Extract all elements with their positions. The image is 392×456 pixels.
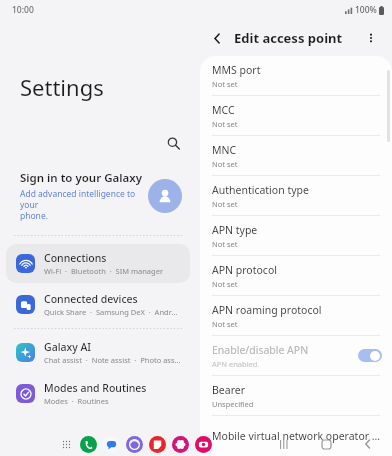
button[interactable]: Back <box>206 27 228 49</box>
staticText: Chat assist · Note assist · Photo assist <box>44 355 182 365</box>
button[interactable]: APN roaming protocol <box>200 296 392 335</box>
staticText: Enable/disable APN <box>212 343 309 357</box>
button[interactable]: Authentication type <box>200 176 392 215</box>
button[interactable]: APN protocol <box>200 256 392 295</box>
button[interactable]: Apps <box>58 436 74 452</box>
button[interactable]: Back <box>358 434 378 454</box>
staticText: APN roaming protocol <box>212 303 322 317</box>
staticText: MMS port <box>212 63 261 77</box>
staticText: Not set <box>212 279 238 289</box>
staticText: Sign in to your Galaxy <box>20 170 142 186</box>
button[interactable]: APN type <box>200 216 392 255</box>
staticText: Quick Share · Samsung DeX · Android Auto <box>44 307 182 317</box>
button[interactable]: Connections <box>6 244 190 283</box>
button[interactable]: Bearer <box>200 376 392 415</box>
staticText: Authentication type <box>212 183 309 197</box>
staticText: Edit access point <box>234 29 360 47</box>
staticText: Unspecified <box>212 399 254 409</box>
staticText: Bearer <box>212 383 246 397</box>
staticText: Connected devices <box>44 292 138 306</box>
staticText: Not set <box>212 239 238 249</box>
staticText: MNC <box>212 143 237 157</box>
staticText: Galaxy AI <box>44 340 92 354</box>
staticText: Connections <box>44 251 107 265</box>
staticText: Not set <box>212 319 238 329</box>
button[interactable]: MCC <box>200 96 392 135</box>
staticText: APN enabled. <box>212 359 260 369</box>
staticText: Not set <box>212 119 238 129</box>
staticText: Settings <box>20 72 196 102</box>
staticText: APN type <box>212 223 258 237</box>
button[interactable]: Internet <box>126 436 143 453</box>
button[interactable]: Messages <box>103 436 120 453</box>
button[interactable]: Connected devices <box>6 285 190 324</box>
button[interactable]: MMS port <box>200 56 392 95</box>
staticText: APN protocol <box>212 263 277 277</box>
button[interactable]: Enable APN <box>358 349 382 362</box>
staticText: Not set <box>212 159 238 169</box>
button[interactable]: Modes and Routines <box>6 374 190 413</box>
staticText: Modes · Routines <box>44 396 109 406</box>
button[interactable]: Recents <box>274 434 294 454</box>
button[interactable]: Camera <box>195 436 212 453</box>
button[interactable]: Notes <box>149 436 166 453</box>
staticText: Modes and Routines <box>44 381 147 395</box>
button[interactable]: Photos <box>172 436 189 453</box>
staticText: MCC <box>212 103 235 117</box>
staticText: Not set <box>212 199 238 209</box>
button[interactable]: Search <box>162 132 184 154</box>
button[interactable]: Mobile virtual network operator type <box>200 416 392 455</box>
staticText: Add advanced intelligence to your phone. <box>20 188 142 221</box>
staticText: 100% <box>355 4 377 16</box>
button[interactable]: Enable/disable APN <box>200 336 392 375</box>
button[interactable]: Sign in to your Galaxy <box>0 164 196 227</box>
staticText: 10:00 <box>12 4 34 16</box>
button[interactable]: More options <box>360 27 382 49</box>
button[interactable]: Galaxy AI <box>6 333 190 372</box>
staticText: Mobile virtual network operator type <box>212 429 382 443</box>
staticText: Not set <box>212 79 238 89</box>
button[interactable]: MNC <box>200 136 392 175</box>
button[interactable]: Phone <box>80 436 97 453</box>
button[interactable]: Home <box>316 434 336 454</box>
staticText: Wi-Fi · Bluetooth · SIM manager <box>44 266 163 276</box>
